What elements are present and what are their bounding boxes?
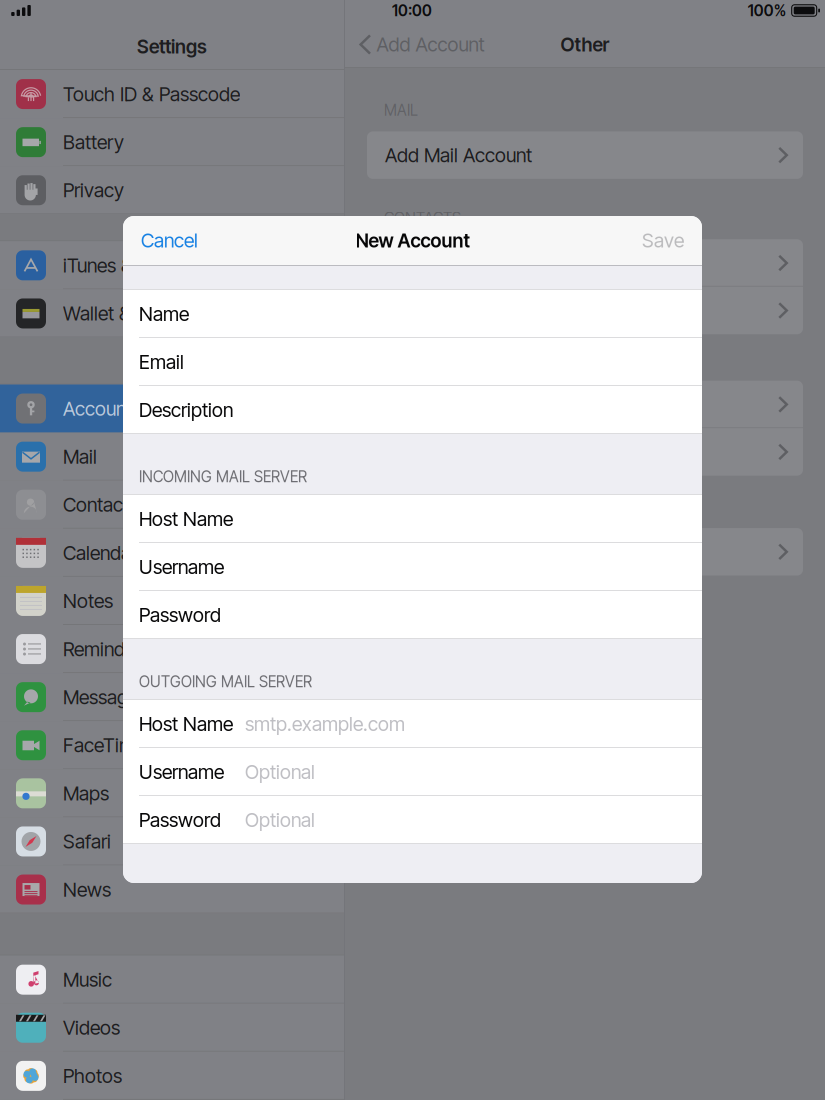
staticText: Accounts & Passwords xyxy=(63,397,254,420)
button[interactable]: iTunes & App Store xyxy=(0,241,344,289)
staticText: Optional xyxy=(245,760,315,784)
staticText: Email xyxy=(139,350,184,374)
staticText: INCOMING MAIL SERVER xyxy=(139,468,307,486)
staticText: Settings xyxy=(137,35,207,58)
staticText: iTunes & App Store xyxy=(63,254,222,277)
button[interactable]: Add CalDAV Account xyxy=(367,381,803,428)
staticText: Photos xyxy=(63,1064,122,1088)
staticText: Password xyxy=(139,808,221,832)
staticText: Messages xyxy=(63,685,147,709)
button[interactable]: Mail xyxy=(0,433,344,481)
staticText: Calendar xyxy=(63,541,137,565)
staticText: Username xyxy=(139,555,224,579)
staticText: Other xyxy=(560,33,609,56)
button[interactable]: Videos xyxy=(0,1004,344,1052)
button[interactable]: Photos xyxy=(0,1052,344,1100)
staticText: Host Name xyxy=(139,507,233,531)
button[interactable]: News xyxy=(0,865,344,914)
button[interactable]: Contacts xyxy=(0,481,344,529)
staticText: Add Mail Account xyxy=(385,143,532,167)
staticText: Music xyxy=(63,968,112,991)
button[interactable]: Add CardDAV Account xyxy=(367,287,803,334)
button[interactable]: Save xyxy=(632,217,694,264)
button[interactable]: Add Mail Account xyxy=(367,131,803,179)
staticText: Privacy xyxy=(63,178,124,202)
button[interactable]: Messages xyxy=(0,673,344,721)
staticText: Host Name xyxy=(139,712,233,736)
staticText: Contacts xyxy=(63,493,138,517)
staticText: Mail xyxy=(63,445,97,468)
staticText: Name xyxy=(139,302,189,326)
button[interactable]: Battery xyxy=(0,118,344,166)
button[interactable]: Reminders xyxy=(0,625,344,673)
button[interactable]: Add LDAP Account xyxy=(367,239,803,287)
button[interactable]: Calendar xyxy=(0,529,344,577)
button[interactable]: Maps xyxy=(0,769,344,817)
button[interactable]: Safari xyxy=(0,817,344,865)
staticText: Battery xyxy=(63,130,124,154)
staticText: Touch ID & Passcode xyxy=(63,82,240,106)
staticText: Username xyxy=(139,760,224,784)
button[interactable]: Music xyxy=(0,956,344,1004)
staticText: Videos xyxy=(63,1016,120,1040)
button[interactable]: Add Subscribed Calendar xyxy=(367,428,803,476)
staticText: OUTGOING MAIL SERVER xyxy=(139,673,312,691)
staticText: Password xyxy=(139,603,221,627)
staticText: Maps xyxy=(63,782,109,805)
staticText: Safari xyxy=(63,830,111,853)
staticText: Save xyxy=(642,229,684,252)
staticText: 10:00 xyxy=(392,1,432,20)
button[interactable]: Privacy xyxy=(0,166,344,214)
staticText: Optional xyxy=(245,808,315,832)
staticText: Wallet & Apple Pay xyxy=(63,302,220,325)
button[interactable]: FaceTime xyxy=(0,721,344,769)
staticText: Add LDAP Account xyxy=(385,251,543,275)
staticText: Add macOS Server Account xyxy=(385,540,620,564)
button[interactable]: Add Account xyxy=(359,27,484,62)
button[interactable]: Notes xyxy=(0,577,344,625)
staticText: News xyxy=(63,878,111,901)
button[interactable]: Touch ID & Passcode xyxy=(0,70,344,118)
button[interactable]: Accounts & Passwords xyxy=(0,384,344,433)
staticText: CONTACTS xyxy=(384,209,461,227)
staticText: Notes xyxy=(63,589,113,613)
staticText: New Account xyxy=(355,229,469,252)
staticText: FaceTime xyxy=(63,733,145,757)
staticText: MAIL xyxy=(384,101,418,119)
staticText: Cancel xyxy=(141,229,198,252)
staticText: Description xyxy=(139,398,233,422)
button[interactable]: Wallet & Apple Pay xyxy=(0,289,344,337)
staticText: Add Account xyxy=(376,33,484,56)
button[interactable]: Cancel xyxy=(131,217,208,264)
button[interactable]: Add macOS Server Account xyxy=(367,528,803,576)
staticText: smtp.example.com xyxy=(245,712,405,736)
staticText: 100% xyxy=(748,1,786,20)
staticText: Reminders xyxy=(63,637,150,661)
